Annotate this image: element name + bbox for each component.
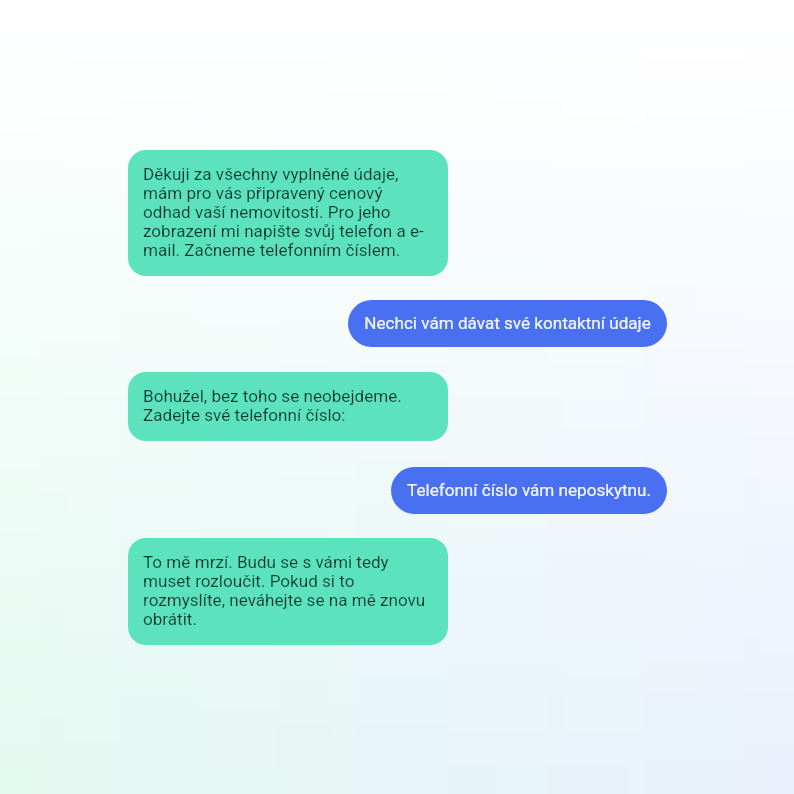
button[interactable]: Telefonní číslo vám neposkytnu.: [391, 467, 667, 514]
button[interactable]: Bohužel, bez toho se neobejdeme. Zadejte…: [128, 372, 448, 441]
staticText: To mě mrzí. Budu se s vámi tedy muset ro…: [143, 553, 429, 629]
staticText: Telefonní číslo vám neposkytnu.: [407, 481, 651, 500]
button[interactable]: Děkuji za všechny vyplněné údaje, mám pr…: [128, 150, 448, 276]
staticText: Nechci vám dávat své kontaktní údaje: [364, 314, 651, 333]
staticText: Děkuji za všechny vyplněné údaje, mám pr…: [143, 165, 429, 260]
staticText: Bohužel, bez toho se neobejdeme. Zadejte…: [143, 387, 429, 425]
button[interactable]: Nechci vám dávat své kontaktní údaje: [348, 300, 667, 347]
button[interactable]: To mě mrzí. Budu se s vámi tedy muset ro…: [128, 538, 448, 645]
